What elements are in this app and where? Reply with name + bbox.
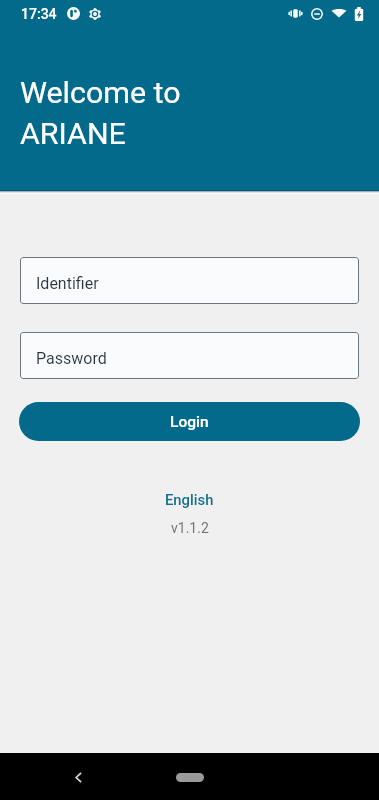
button[interactable]: Login <box>19 402 360 441</box>
staticText: v1.1.2 <box>171 520 209 536</box>
staticText: Password <box>36 349 107 368</box>
button[interactable]: English <box>157 488 222 511</box>
button[interactable]: Home <box>160 765 220 789</box>
staticText: 17:34 <box>21 6 57 22</box>
staticText: Identifier <box>36 274 99 293</box>
button[interactable]: Password <box>20 332 359 379</box>
staticText: Login <box>170 413 209 431</box>
staticText: Welcome to ARIANE <box>20 75 181 151</box>
button[interactable]: Identifier <box>20 257 359 304</box>
button[interactable]: Back <box>60 759 96 795</box>
